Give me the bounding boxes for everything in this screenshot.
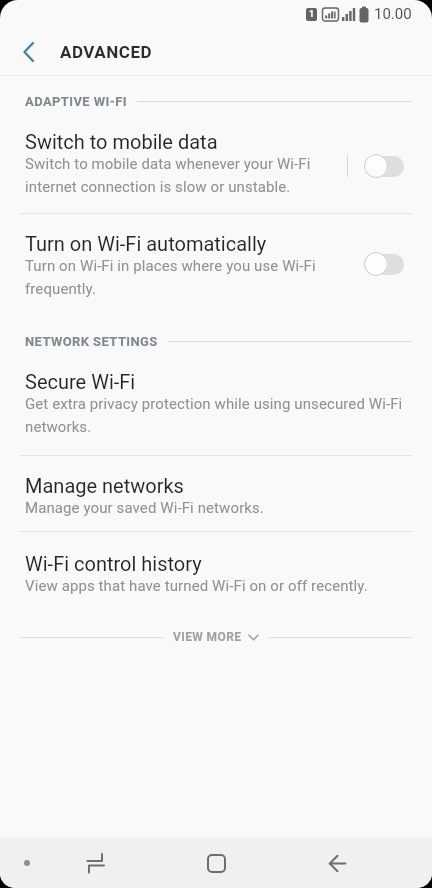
button[interactable]: Turn on Wi-Fi automatically [0, 214, 432, 316]
button[interactable] [76, 843, 116, 883]
staticText: Secure Wi-Fi [25, 370, 136, 393]
button[interactable]: Manage networks [0, 456, 432, 531]
staticText: Switch to mobile data whenever your Wi-F… [25, 155, 311, 196]
staticText: VIEW MORE [173, 630, 242, 644]
staticText: Switch to mobile data [25, 130, 218, 153]
staticText: View apps that have turned Wi-Fi on or o… [25, 577, 368, 595]
button[interactable]: Secure Wi-Fi [0, 366, 432, 455]
button[interactable] [364, 252, 404, 276]
staticText: Wi-Fi control history [25, 552, 202, 575]
button[interactable]: Wi-Fi control history [0, 532, 432, 610]
staticText: ADVANCED [60, 42, 153, 62]
button[interactable] [24, 860, 30, 866]
staticText: 10.00 [374, 5, 412, 23]
button[interactable] [364, 154, 404, 178]
staticText: Get extra privacy protection while using… [25, 395, 403, 436]
staticText: ADAPTIVE WI-FI [25, 94, 127, 109]
button[interactable] [316, 842, 358, 884]
staticText: NETWORK SETTINGS [25, 334, 158, 349]
staticText: 1 [309, 9, 315, 20]
staticText: Turn on Wi-Fi in places where you use Wi… [25, 257, 316, 298]
staticText: Turn on Wi-Fi automatically [25, 232, 267, 255]
button[interactable] [8, 32, 48, 72]
staticText: Manage networks [25, 474, 184, 497]
button[interactable]: VIEW MORE [0, 610, 432, 664]
button[interactable]: Switch to mobile data [0, 126, 432, 213]
button[interactable] [194, 841, 238, 885]
staticText: Manage your saved Wi-Fi networks. [25, 499, 264, 517]
